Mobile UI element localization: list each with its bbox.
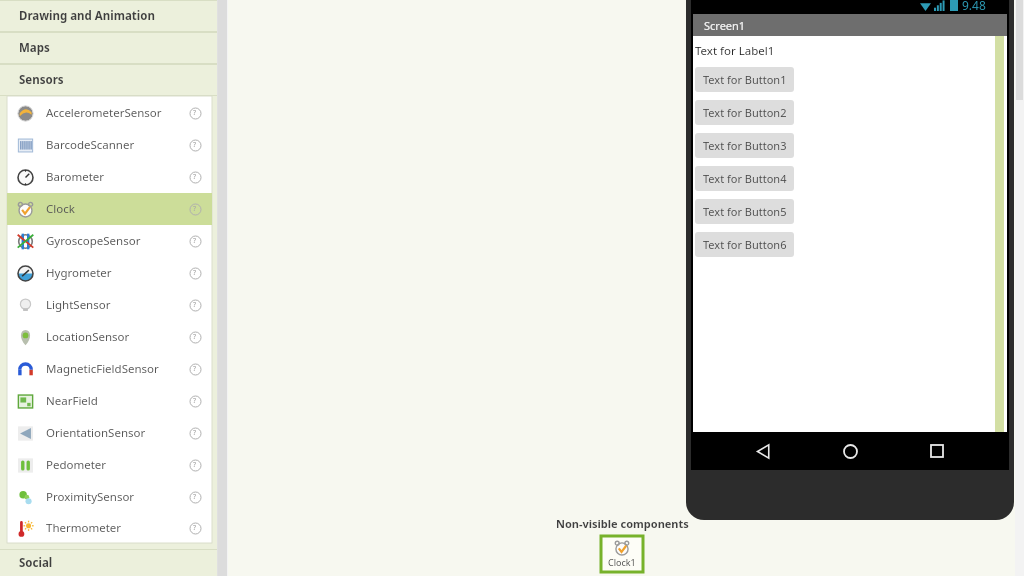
button[interactable]: Text for Button4 bbox=[695, 166, 794, 191]
staticText: AccelerometerSensor bbox=[46, 105, 162, 121]
button[interactable]: Sensors bbox=[0, 65, 217, 95]
button[interactable]: NearField bbox=[7, 385, 212, 417]
staticText: ? bbox=[193, 236, 197, 246]
staticText: GyroscopeSensor bbox=[46, 233, 141, 249]
staticText: OrientationSensor bbox=[46, 425, 146, 441]
staticText: Social bbox=[19, 555, 53, 571]
staticText: ? bbox=[193, 172, 197, 182]
staticText: 9.48 bbox=[962, 0, 986, 13]
button[interactable]: Social bbox=[0, 550, 217, 576]
button[interactable]: AccelerometerSensor bbox=[7, 97, 212, 129]
button[interactable]: Help NearField bbox=[187, 393, 203, 409]
button[interactable]: Recents bbox=[920, 434, 954, 468]
staticText: ? bbox=[193, 396, 197, 406]
staticText: ? bbox=[193, 428, 197, 438]
button[interactable]: Hygrometer bbox=[7, 257, 212, 289]
button[interactable]: LocationSensor bbox=[7, 321, 212, 353]
staticText: Text for Button6 bbox=[703, 237, 787, 252]
staticText: ? bbox=[193, 140, 197, 150]
button[interactable]: MagneticFieldSensor bbox=[7, 353, 212, 385]
staticText: Hygrometer bbox=[46, 265, 112, 281]
button[interactable]: Home bbox=[833, 434, 867, 468]
staticText: BarcodeScanner bbox=[46, 137, 135, 153]
button[interactable]: Back bbox=[746, 434, 780, 468]
button[interactable]: Help AccelerometerSensor bbox=[187, 105, 203, 121]
button[interactable]: BarcodeScanner bbox=[7, 129, 212, 161]
staticText: ? bbox=[193, 460, 197, 470]
button[interactable]: Clock1 bbox=[601, 536, 643, 572]
staticText: Pedometer bbox=[46, 457, 107, 473]
staticText: Text for Button5 bbox=[703, 204, 787, 219]
button[interactable]: Thermometer bbox=[7, 513, 212, 543]
staticText: Text for Button3 bbox=[703, 138, 787, 153]
staticText: ? bbox=[193, 364, 197, 374]
button[interactable]: Help Thermometer bbox=[187, 520, 203, 536]
button[interactable]: GyroscopeSensor bbox=[7, 225, 212, 257]
staticText: ? bbox=[193, 300, 197, 310]
button[interactable]: Help LightSensor bbox=[187, 297, 203, 313]
staticText: ? bbox=[193, 492, 197, 502]
button[interactable]: Help ProximitySensor bbox=[187, 489, 203, 505]
staticText: ? bbox=[193, 204, 197, 214]
button[interactable]: Help Pedometer bbox=[187, 457, 203, 473]
staticText: Barometer bbox=[46, 169, 105, 185]
button[interactable]: Maps bbox=[0, 33, 217, 63]
button[interactable]: ProximitySensor bbox=[7, 481, 212, 513]
button[interactable]: Text for Button3 bbox=[695, 133, 794, 158]
staticText: Drawing and Animation bbox=[19, 8, 155, 24]
staticText: Clock1 bbox=[608, 556, 636, 568]
staticText: LightSensor bbox=[46, 297, 111, 313]
staticText: LocationSensor bbox=[46, 329, 130, 345]
button[interactable]: Drawing and Animation bbox=[0, 1, 217, 31]
staticText: ? bbox=[193, 268, 197, 278]
button[interactable]: Help Hygrometer bbox=[187, 265, 203, 281]
staticText: Text for Button2 bbox=[703, 105, 787, 120]
button[interactable]: Help OrientationSensor bbox=[187, 425, 203, 441]
staticText: ? bbox=[193, 332, 197, 342]
button[interactable]: LightSensor bbox=[7, 289, 212, 321]
staticText: Screen1 bbox=[704, 18, 746, 33]
button[interactable]: Pedometer bbox=[7, 449, 212, 481]
button[interactable]: Help LocationSensor bbox=[187, 329, 203, 345]
staticText: Maps bbox=[19, 40, 50, 56]
button[interactable]: Barometer bbox=[7, 161, 212, 193]
button[interactable]: Text for Button1 bbox=[695, 67, 794, 92]
button[interactable]: Help Clock bbox=[187, 201, 203, 217]
staticText: MagneticFieldSensor bbox=[46, 361, 159, 377]
button[interactable]: Help MagneticFieldSensor bbox=[187, 361, 203, 377]
staticText: Text for Button4 bbox=[703, 171, 787, 186]
staticText: Thermometer bbox=[46, 520, 122, 536]
button[interactable]: Clock bbox=[7, 193, 212, 225]
button[interactable]: Text for Label1 bbox=[695, 43, 775, 59]
staticText: Text for Button1 bbox=[703, 72, 787, 87]
button[interactable]: Text for Button2 bbox=[695, 100, 794, 125]
button[interactable]: OrientationSensor bbox=[7, 417, 212, 449]
staticText: NearField bbox=[46, 393, 98, 409]
staticText: Clock bbox=[46, 201, 75, 217]
staticText: ? bbox=[193, 523, 197, 533]
button[interactable]: Text for Button5 bbox=[695, 199, 794, 224]
button[interactable]: Help BarcodeScanner bbox=[187, 137, 203, 153]
staticText: Non-visible components bbox=[556, 516, 689, 531]
button[interactable]: Text for Button6 bbox=[695, 232, 794, 257]
staticText: Sensors bbox=[19, 72, 64, 88]
staticText: ? bbox=[193, 108, 197, 118]
button[interactable]: Help GyroscopeSensor bbox=[187, 233, 203, 249]
button[interactable]: Help Barometer bbox=[187, 169, 203, 185]
staticText: ProximitySensor bbox=[46, 489, 135, 505]
